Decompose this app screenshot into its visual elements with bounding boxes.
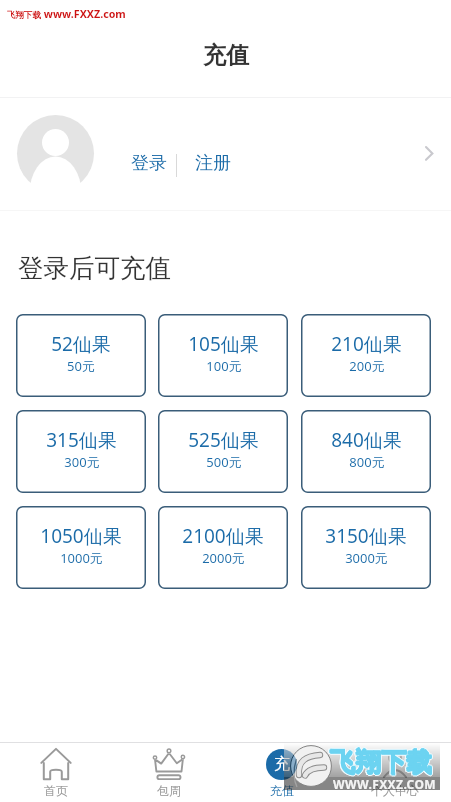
- staticText: 飞翔下载: [331, 747, 433, 779]
- staticText: 充值: [203, 41, 249, 70]
- staticText: 52仙果: [51, 331, 111, 357]
- staticText: 飞翔下载: [331, 745, 433, 777]
- staticText: 1050仙果: [40, 523, 122, 549]
- staticText: 飞翔下载: [328, 747, 430, 779]
- staticText: 充: [274, 754, 290, 774]
- button[interactable]: 个人中心: [338, 743, 451, 802]
- staticText: 飞翔下载: [331, 746, 433, 778]
- staticText: 3000元: [345, 549, 388, 567]
- staticText: 飞翔下载: [330, 748, 432, 780]
- staticText: 210仙果: [331, 331, 402, 357]
- other: 包周: [151, 748, 187, 782]
- button[interactable]: 1050仙果: [16, 506, 146, 589]
- staticText: 315仙果: [46, 427, 117, 453]
- staticText: 525仙果: [188, 427, 259, 453]
- button[interactable]: 840仙果: [301, 410, 431, 493]
- staticText: 首页: [44, 783, 68, 798]
- button[interactable]: 包周: [112, 743, 225, 802]
- staticText: 200元: [349, 357, 385, 375]
- staticText: 飞翔下载: [330, 746, 432, 778]
- staticText: 飞翔下载 www.FXXZ.com: [7, 7, 126, 22]
- button[interactable]: 105仙果: [158, 314, 288, 397]
- button[interactable]: 注册: [195, 152, 231, 175]
- staticText: 2100仙果: [182, 523, 264, 549]
- button[interactable]: 充: [225, 743, 338, 802]
- staticText: 个人中心: [371, 783, 419, 798]
- button[interactable]: 登录: [131, 152, 167, 175]
- staticText: 840仙果: [331, 427, 402, 453]
- button[interactable]: 2100仙果: [158, 506, 288, 589]
- other: 个人中心: [377, 748, 413, 782]
- staticText: 飞翔下载: [328, 746, 430, 778]
- staticText: 充值: [270, 783, 294, 798]
- button[interactable]: 210仙果: [301, 314, 431, 397]
- staticText: 飞翔下载: [330, 746, 432, 778]
- staticText: 300元: [64, 453, 100, 471]
- staticText: 50元: [67, 357, 95, 375]
- staticText: 100元: [206, 357, 242, 375]
- staticText: 包周: [157, 783, 181, 798]
- staticText: 800元: [349, 453, 385, 471]
- staticText: 500元: [206, 453, 242, 471]
- staticText: 飞翔下载: [329, 746, 431, 778]
- staticText: WWW.FXXZ.COM: [333, 776, 437, 792]
- other: Account details: [425, 146, 435, 162]
- button[interactable]: 52仙果: [16, 314, 146, 397]
- button[interactable]: 3150仙果: [301, 506, 431, 589]
- staticText: 2000元: [202, 549, 245, 567]
- button[interactable]: 315仙果: [16, 410, 146, 493]
- button[interactable]: 首页: [0, 743, 112, 802]
- staticText: 飞翔下载: [330, 747, 432, 779]
- staticText: 飞翔下载: [330, 744, 432, 776]
- staticText: 飞翔下载: [328, 745, 430, 777]
- staticText: 3150仙果: [325, 523, 407, 549]
- staticText: 1000元: [60, 549, 103, 567]
- staticText: 飞翔下载: [330, 745, 432, 777]
- button[interactable]: 登录: [0, 98, 451, 210]
- button[interactable]: 525仙果: [158, 410, 288, 493]
- staticText: 105仙果: [188, 331, 259, 357]
- staticText: 登录后可充值: [18, 252, 171, 284]
- other: 首页: [38, 748, 74, 782]
